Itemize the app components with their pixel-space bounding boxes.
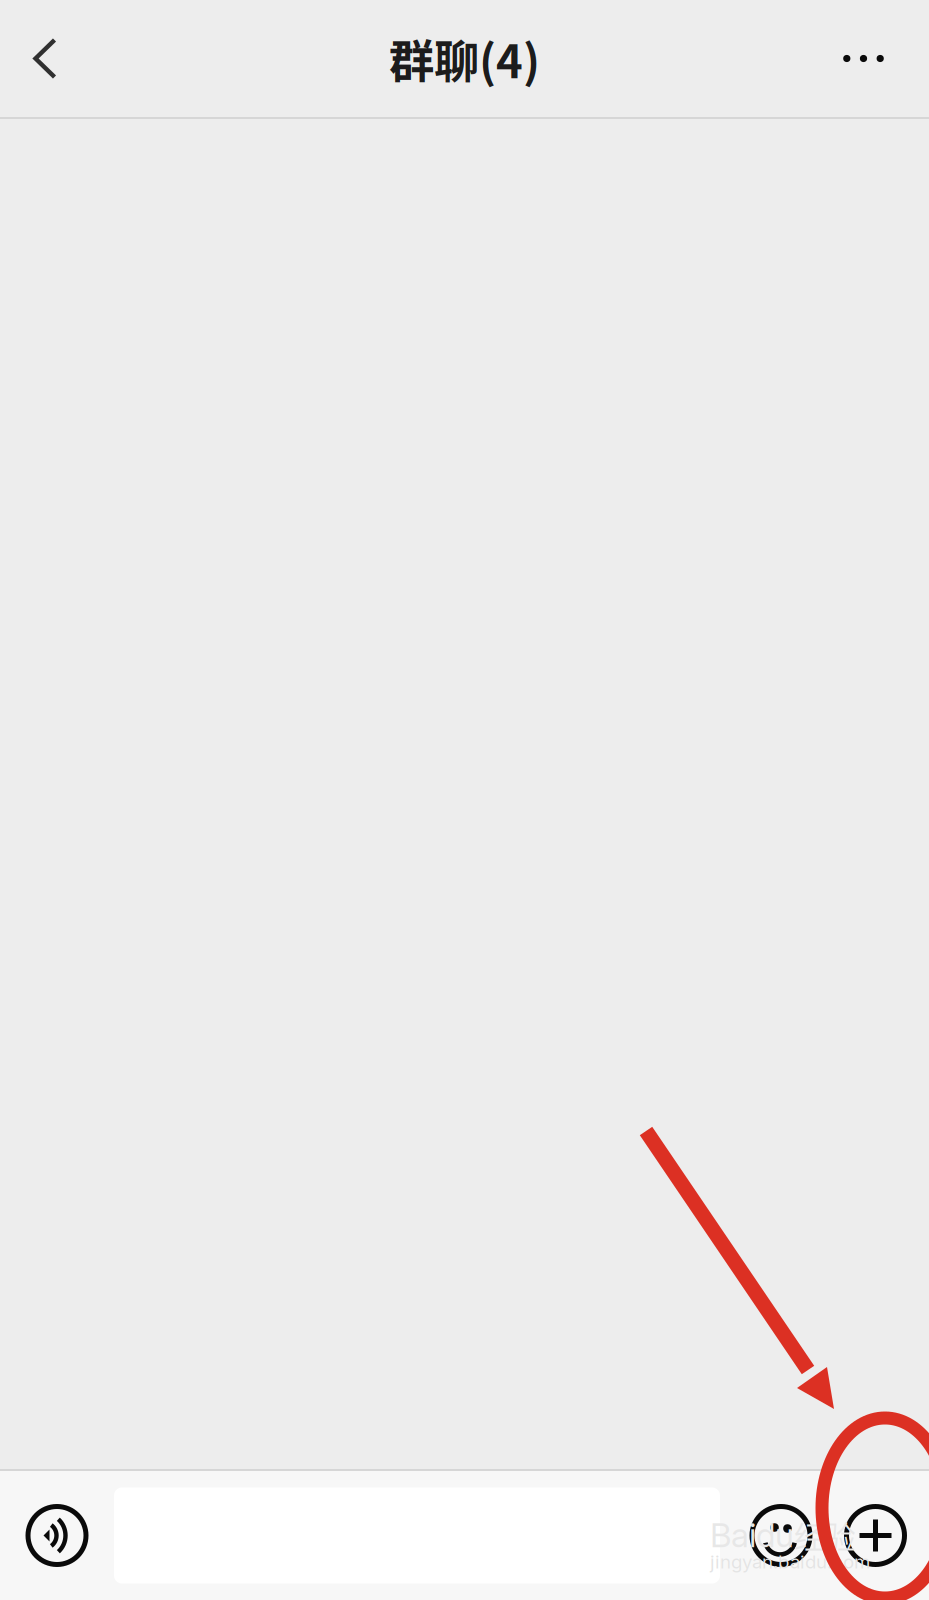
staticText: Baidu: [710, 1515, 794, 1555]
staticText: 群聊(4): [389, 26, 540, 91]
button[interactable]: More functions: [842, 1471, 909, 1600]
button[interactable]: Voice message: [0, 1470, 114, 1600]
staticText: 经验: [794, 1513, 856, 1557]
staticText: jingyan.baidu.com: [710, 1550, 870, 1573]
button[interactable]: More: [798, 0, 929, 117]
button[interactable]: Emoji: [720, 1471, 842, 1600]
button[interactable]: Back: [0, 0, 88, 117]
